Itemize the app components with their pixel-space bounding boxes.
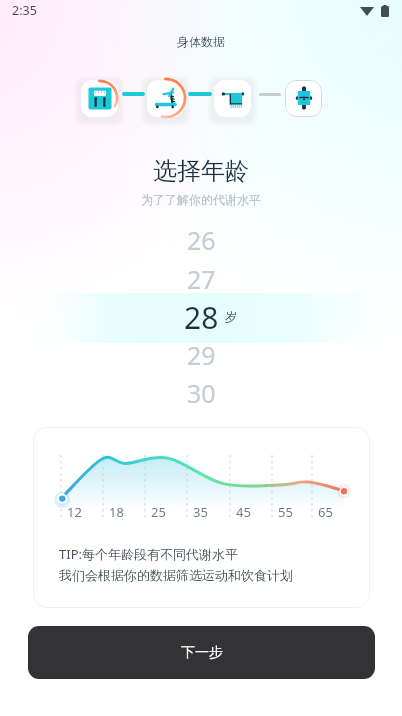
button[interactable]: 27 (0, 262, 402, 292)
staticText: 30 (187, 376, 216, 406)
button[interactable]: Step 3 (214, 80, 251, 117)
staticText: 2:35 (12, 2, 37, 19)
staticText: 35 (193, 503, 208, 521)
staticText: 26 (187, 223, 216, 253)
staticText: 65 (318, 503, 333, 521)
button[interactable]: Step 2 (147, 80, 184, 117)
staticText: 29 (187, 338, 216, 368)
staticText: 身体数据 (177, 34, 225, 49)
button[interactable]: Step 1 (81, 80, 118, 117)
staticText: 25 (151, 503, 166, 521)
staticText: 12 (67, 503, 82, 521)
staticText: 28 (184, 297, 219, 333)
button[interactable]: 下一步 (28, 626, 375, 679)
staticText: 为了了解你的代谢水平 (141, 192, 261, 207)
button[interactable]: 30 (0, 376, 402, 406)
staticText: 55 (278, 503, 293, 521)
staticText: 27 (187, 262, 216, 292)
button[interactable]: 29 (0, 338, 402, 368)
button[interactable]: 28 (0, 297, 402, 333)
staticText: 下一步 (181, 644, 223, 662)
button[interactable]: 26 (0, 223, 402, 253)
staticText: TIP:每个年龄段有不同代谢水平 (59, 545, 238, 563)
staticText: 我们会根据你的数据筛选运动和饮食计划 (59, 567, 293, 583)
staticText: 45 (236, 503, 251, 521)
staticText: 选择年龄 (153, 156, 249, 186)
staticText: 岁 (225, 309, 237, 324)
staticText: 18 (109, 503, 124, 521)
button[interactable]: Step 4 (285, 80, 322, 117)
